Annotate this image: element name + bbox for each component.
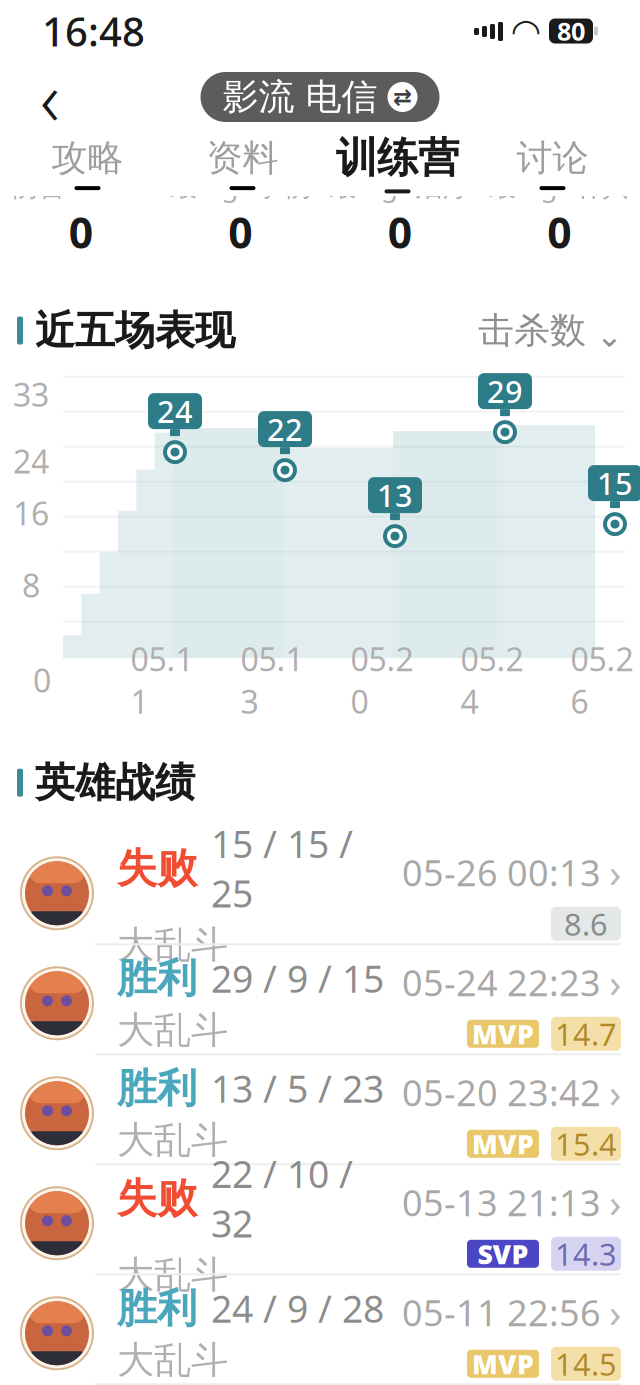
staticText: 14.7 — [555, 1013, 617, 1054]
button[interactable]: 胜利 — [0, 1059, 640, 1169]
staticText: 讨论 — [516, 136, 588, 180]
staticText: › — [609, 1176, 621, 1229]
button[interactable]: 胜利 — [0, 1279, 640, 1385]
staticText: 29 — [487, 371, 523, 411]
staticText: › — [609, 956, 621, 1009]
staticText: 最high治疗 — [329, 166, 471, 204]
staticText: 大乱斗 — [117, 922, 228, 968]
staticText: 22 / 10 / 32 — [211, 1149, 353, 1248]
staticText: 16:48 — [42, 4, 145, 57]
staticText: 15 — [597, 463, 633, 503]
staticText: 最high补兵 — [488, 166, 630, 204]
staticText: 最high英雄伤害 — [10, 132, 152, 204]
staticText: 22 — [267, 409, 303, 449]
staticText: 胜利 — [117, 1064, 197, 1113]
staticText: 大乱斗 — [117, 1007, 228, 1053]
staticText: 资料 — [206, 136, 278, 180]
staticText: 0 — [69, 204, 93, 260]
staticText: 05.20 — [350, 638, 413, 723]
staticText: 24 / 9 / 28 — [211, 1283, 384, 1333]
staticText: 击杀数 — [478, 308, 586, 353]
staticText: 胜利 — [117, 1284, 197, 1333]
staticText: SVP — [477, 1236, 528, 1271]
button[interactable]: 失败 — [0, 839, 640, 949]
staticText: 29 / 9 / 15 — [211, 953, 384, 1003]
staticText: 05.13 — [240, 638, 303, 723]
staticText: MVP — [472, 1346, 534, 1381]
staticText: 33 — [13, 373, 49, 416]
staticText: 最high承伤 — [169, 166, 311, 204]
staticText: 失败 — [117, 844, 197, 893]
staticText: 0 — [388, 204, 412, 260]
staticText: 大乱斗 — [117, 1117, 228, 1163]
button[interactable]: 资料 — [165, 133, 320, 193]
staticText: 0 — [228, 204, 252, 260]
button[interactable]: 影流 电信 — [200, 72, 439, 122]
staticText: 大乱斗 — [117, 1337, 228, 1383]
staticText: › — [609, 1286, 621, 1339]
staticText: 攻略 — [51, 136, 123, 180]
staticText: 24 — [13, 440, 49, 482]
staticText: 16 — [13, 492, 49, 534]
staticText: 英雄战绩 — [35, 758, 195, 807]
staticText: MVP — [472, 1126, 534, 1161]
staticText: 05-24 22:23 — [402, 958, 601, 1006]
staticText: 05-26 00:13 — [402, 848, 601, 896]
button[interactable]: 击杀数 — [478, 309, 623, 353]
staticText: 80 — [557, 14, 585, 48]
staticText: 胜利 — [117, 954, 197, 1003]
staticText: ⌄ — [596, 318, 623, 354]
staticText: 8 — [22, 564, 40, 606]
staticText: 训练营 — [336, 133, 459, 183]
staticText: 15 / 15 / 25 — [211, 819, 353, 918]
staticText: 15.4 — [555, 1123, 617, 1164]
staticText: ‹ — [40, 47, 60, 147]
staticText: 大乱斗 — [117, 1252, 228, 1298]
staticText: › — [609, 1066, 621, 1119]
staticText: 05.26 — [570, 638, 633, 723]
button[interactable]: 胜利 — [0, 949, 640, 1059]
staticText: 13 / 5 / 23 — [211, 1063, 384, 1113]
staticText: 05-20 23:42 — [402, 1068, 601, 1116]
staticText: 24 — [157, 391, 193, 431]
staticText: 近五场表现 — [35, 306, 235, 355]
button[interactable]: 攻略 — [10, 133, 165, 193]
staticText: 影流 电信 — [222, 75, 377, 119]
staticText: 14.5 — [555, 1343, 617, 1384]
staticText: 0 — [547, 204, 571, 260]
button[interactable]: Back — [20, 67, 80, 127]
staticText: 13 — [377, 475, 413, 515]
staticText: ⇄ — [393, 84, 412, 110]
button[interactable]: 失败 — [0, 1169, 640, 1279]
button[interactable]: 训练营 — [320, 133, 475, 193]
staticText: 05.24 — [460, 638, 523, 723]
staticText: MVP — [472, 1016, 534, 1051]
staticText: 05-13 21:13 — [402, 1178, 601, 1226]
staticText: 14.3 — [555, 1233, 617, 1274]
staticText: 失败 — [117, 1174, 197, 1223]
staticText: 8.6 — [564, 903, 608, 944]
staticText: 05.11 — [130, 638, 193, 723]
button[interactable]: 讨论 — [475, 133, 630, 193]
staticText: ◠ — [512, 11, 539, 51]
staticText: › — [609, 846, 621, 899]
staticText: 05-11 22:56 — [402, 1288, 601, 1336]
staticText: 0 — [33, 659, 51, 701]
